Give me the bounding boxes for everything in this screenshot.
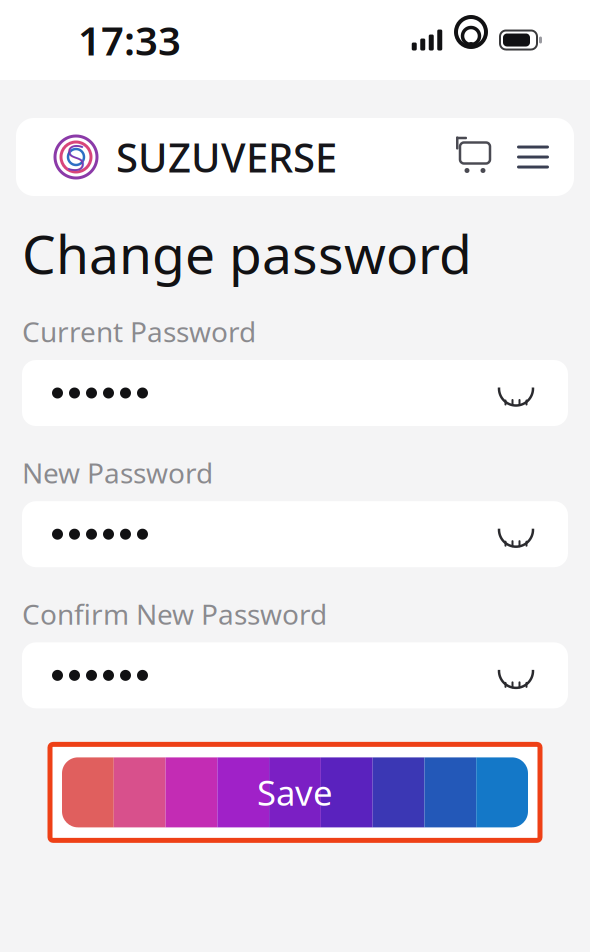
- button[interactable]: [22, 642, 568, 708]
- button[interactable]: Save: [50, 744, 540, 840]
- staticText: S: [66, 133, 86, 181]
- button[interactable]: Cart: [446, 128, 504, 186]
- button[interactable]: [22, 360, 568, 426]
- staticText: Save: [257, 769, 333, 815]
- staticText: SUZUVERSE: [116, 130, 337, 183]
- staticText: Current Password: [22, 313, 256, 350]
- staticText: Confirm New Password: [22, 595, 327, 632]
- staticText: 17:33: [78, 13, 181, 66]
- staticText: New Password: [22, 454, 213, 491]
- staticText: Change password: [22, 218, 472, 289]
- button[interactable]: [22, 501, 568, 567]
- button[interactable]: Menu: [504, 128, 562, 186]
